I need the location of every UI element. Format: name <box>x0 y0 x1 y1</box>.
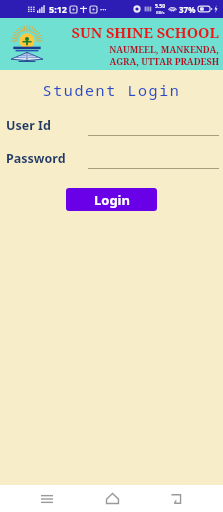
staticText: 37% <box>179 4 196 15</box>
staticText: ··· <box>100 4 107 15</box>
button[interactable]: Back <box>159 485 193 512</box>
staticText: Student Login <box>0 80 223 100</box>
button[interactable]: Home <box>95 485 129 512</box>
staticText: KB/s <box>156 10 165 15</box>
staticText: 5.50 <box>155 3 165 10</box>
button[interactable]: Login <box>66 188 157 211</box>
button[interactable] <box>88 114 219 136</box>
staticText: NAUMEEL, MANKENDA, <box>52 43 219 55</box>
staticText: 5:12 <box>49 3 67 15</box>
button[interactable] <box>88 147 219 169</box>
staticText: Password <box>6 150 66 167</box>
staticText: AGRA, UTTAR PRADESH <box>52 55 219 67</box>
staticText: User Id <box>6 117 51 134</box>
button[interactable]: Recent apps <box>30 485 64 512</box>
staticText: Login <box>94 191 130 209</box>
staticText: SUN SHINE SCHOOL <box>52 22 219 42</box>
